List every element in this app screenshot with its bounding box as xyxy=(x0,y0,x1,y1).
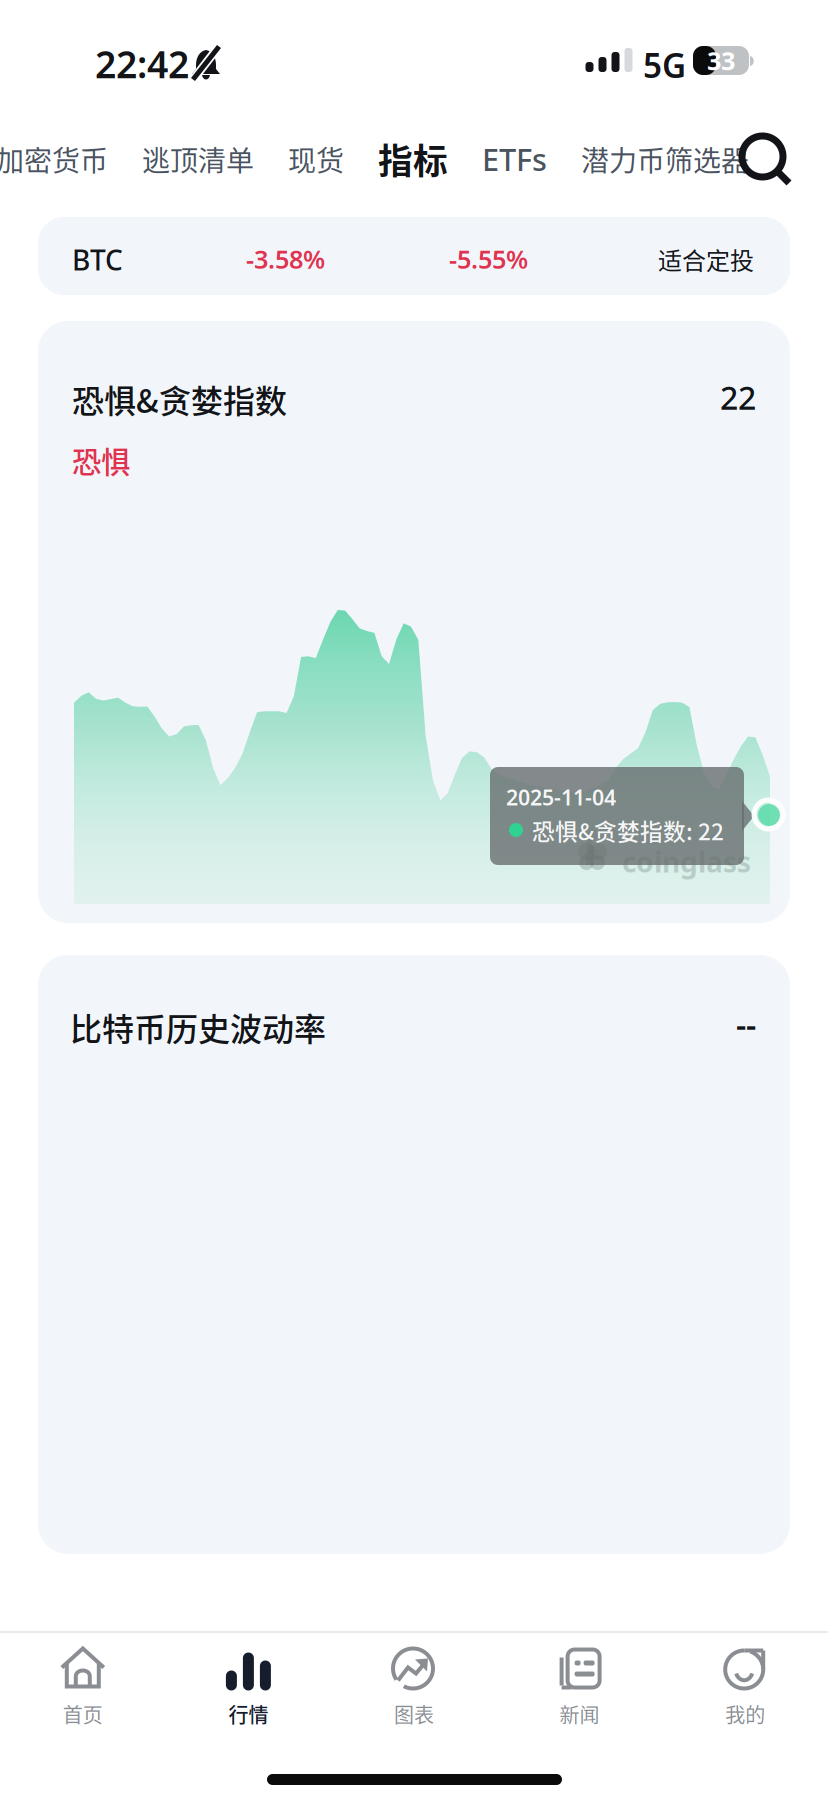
staticText: 33 xyxy=(707,44,735,77)
staticText: -- xyxy=(736,1003,756,1045)
button[interactable]: 指标 xyxy=(378,130,448,188)
button[interactable]: Search xyxy=(742,136,794,188)
button[interactable]: 现货 xyxy=(288,130,344,188)
staticText: 我的 xyxy=(725,1699,765,1728)
button[interactable]: 首页 xyxy=(0,1619,166,1759)
staticText: 指标 xyxy=(378,134,448,184)
staticText: 逃顶清单 xyxy=(142,139,254,179)
button[interactable]: 加密货币 xyxy=(0,130,108,188)
staticText: BTC xyxy=(72,241,123,278)
staticText: -3.58% xyxy=(246,242,325,276)
button[interactable]: 逃顶清单 xyxy=(142,130,254,188)
button[interactable]: 我的 xyxy=(662,1619,828,1759)
button[interactable]: 潜力币筛选器 xyxy=(581,130,749,188)
button[interactable]: 新闻 xyxy=(497,1619,662,1759)
staticText: 潜力币筛选器 xyxy=(581,139,749,179)
staticText: 新闻 xyxy=(560,1699,600,1728)
staticText: 恐惧&贪婪指数: 22 xyxy=(532,814,724,847)
staticText: 2025-11-04 xyxy=(506,783,616,811)
staticText: 图表 xyxy=(394,1699,434,1728)
staticText: 适合定投 xyxy=(658,242,754,277)
staticText: 22:42 xyxy=(95,39,189,89)
staticText: ETFs xyxy=(482,139,547,179)
button[interactable]: BTC xyxy=(0,217,828,295)
staticText: 5G xyxy=(643,43,686,87)
staticText: 行情 xyxy=(228,1699,268,1728)
button[interactable]: ETFs xyxy=(482,130,547,188)
staticText: 22 xyxy=(720,376,756,418)
staticText: 现货 xyxy=(288,139,344,179)
staticText: coinglass xyxy=(622,843,751,880)
button[interactable]: 图表 xyxy=(331,1619,497,1759)
staticText: 恐惧 xyxy=(72,439,130,481)
staticText: -5.55% xyxy=(449,242,528,276)
button[interactable]: 行情 xyxy=(166,1619,331,1759)
staticText: 恐惧&贪婪指数 xyxy=(72,376,287,422)
staticText: 首页 xyxy=(63,1699,103,1728)
staticText: 加密货币 xyxy=(0,139,108,179)
staticText: 比特币历史波动率 xyxy=(70,1004,326,1050)
